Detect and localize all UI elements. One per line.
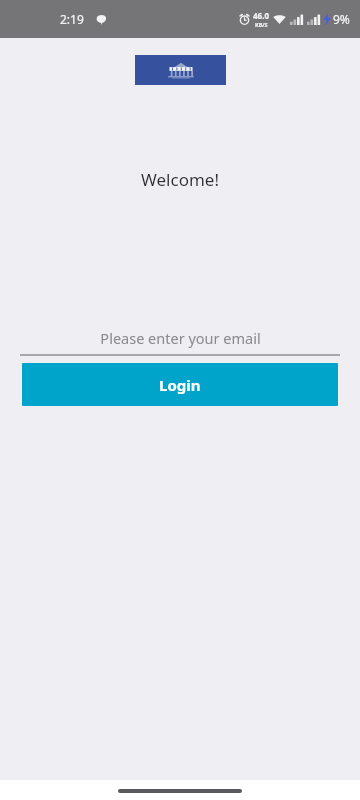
button[interactable]: Please enter your email (20, 325, 340, 356)
button[interactable]: Login (22, 363, 338, 406)
staticText: 9% (333, 11, 350, 27)
staticText: 2:19 (60, 11, 84, 27)
staticText: 46.0 (253, 10, 269, 21)
staticText: Login (159, 375, 201, 395)
staticText: Welcome! (0, 168, 360, 191)
button[interactable]: App logo (135, 55, 226, 85)
staticText: Please enter your email (100, 328, 261, 348)
staticText: KB/S (255, 21, 268, 28)
